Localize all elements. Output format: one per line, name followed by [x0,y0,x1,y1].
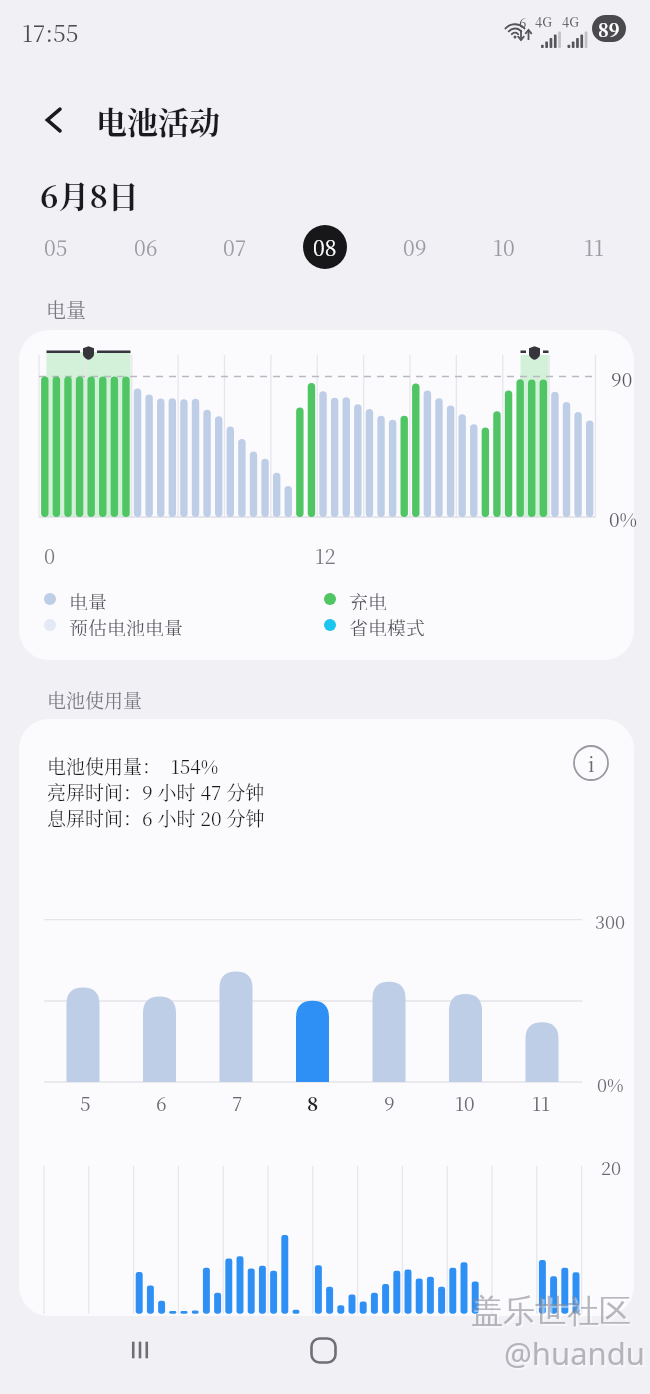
staticText: 300 [595,908,626,934]
staticText: 7 [232,1089,243,1116]
staticText: 06 [134,232,158,262]
staticText: 4G [535,12,552,31]
staticText: @huandu [506,1334,647,1376]
button[interactable]: Back [30,96,78,144]
staticText: 8 [307,1089,319,1116]
staticText: 89 [598,16,620,42]
staticText: 10 [455,1089,475,1116]
button[interactable]: 10 [482,225,526,269]
button[interactable]: Info [571,743,611,783]
staticText: 09 [403,232,427,262]
staticText: 0% [597,1071,624,1097]
staticText: 9 [384,1089,395,1116]
staticText: 4G [562,12,579,31]
button[interactable]: Home [295,1322,351,1378]
staticText: 11 [532,1089,550,1116]
button[interactable]: 11 [572,225,616,269]
staticText: 10 [493,232,515,262]
staticText: 电池使用量 [47,686,143,713]
staticText: 6月8日 [40,172,139,217]
staticText: 90 [611,365,633,392]
staticText: 电量 [69,588,108,610]
button[interactable]: 09 [393,225,437,269]
staticText: 电量 [46,295,86,324]
button[interactable]: 06 [124,225,168,269]
staticText: 盖乐世社区 [473,1293,633,1333]
staticText: 05 [44,232,68,262]
staticText: 07 [223,232,247,262]
staticText: 6 [156,1089,167,1116]
staticText: 电池使用量： 154% 亮屏时间：9 小时 47 分钟 息屏时间：6 小时 20… [47,752,265,831]
button[interactable]: 07 [213,225,257,269]
staticText: 5 [80,1089,91,1116]
staticText: 预估电池电量 [69,614,184,636]
staticText: 20 [601,1154,622,1180]
staticText: 12 [315,541,336,570]
button[interactable]: 05 [34,225,78,269]
button[interactable]: 08 [303,225,347,269]
staticText: 11 [584,232,604,262]
staticText: 0 [44,541,56,570]
staticText: 0% [609,505,638,532]
staticText: 省电模式 [349,614,426,636]
staticText: @huandu [504,1332,645,1374]
staticText: i [588,749,595,778]
staticText: 电池活动 [96,98,220,143]
staticText: 08 [313,232,337,262]
button[interactable]: Recents [112,1322,168,1378]
staticText: 盖乐世社区 [471,1291,631,1331]
staticText: 17:55 [22,16,79,49]
staticText: 6 [519,13,527,32]
staticText: 充电 [349,588,388,610]
